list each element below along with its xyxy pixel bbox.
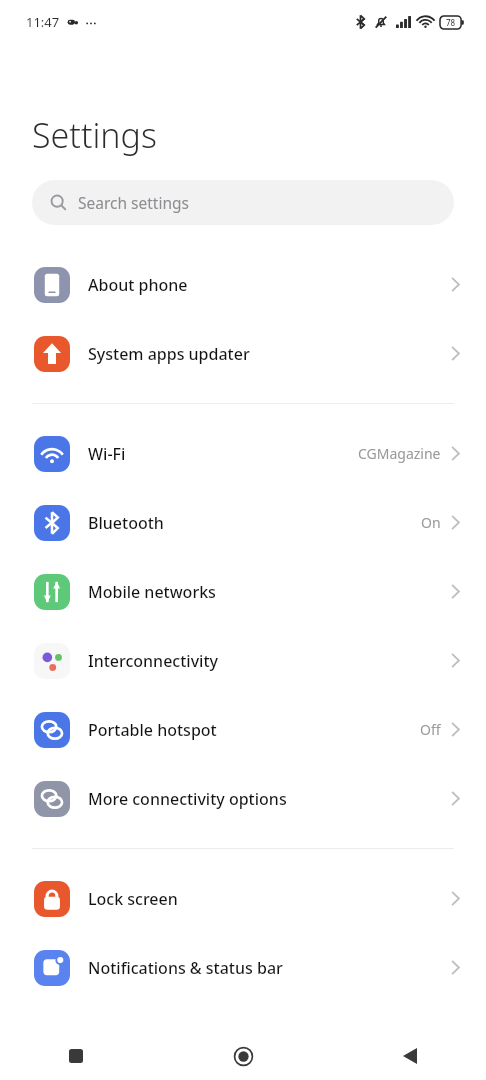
staticText: Search settings [78,192,189,213]
staticText: On [421,513,441,532]
button[interactable]: System apps updater [0,319,486,388]
staticText: Lock screen [88,888,451,910]
button[interactable]: Home [193,1032,293,1080]
staticText: Settings [32,112,157,158]
staticText: 11:47 [26,13,60,31]
button[interactable]: More connectivity options [0,764,486,833]
staticText: Portable hotspot [88,719,420,741]
staticText: Interconnectivity [88,650,451,672]
staticText: Bluetooth [88,512,421,534]
button[interactable]: Lock screen [0,864,486,933]
button[interactable]: Portable hotspot [0,695,486,764]
staticText: CGMagazine [358,444,441,463]
button[interactable]: Interconnectivity [0,626,486,695]
staticText: Notifications & status bar [88,957,451,979]
button[interactable]: Wi-Fi [0,419,486,488]
button[interactable]: Recent apps [26,1032,126,1080]
button[interactable]: Bluetooth [0,488,486,557]
button[interactable]: Notifications & status bar [0,933,486,1002]
button[interactable]: Search settings [32,180,454,225]
staticText: Mobile networks [88,581,451,603]
button[interactable]: About phone [0,250,486,319]
staticText: Off [420,720,441,739]
staticText: System apps updater [88,343,451,365]
staticText: Wi-Fi [88,443,358,465]
button[interactable]: Mobile networks [0,557,486,626]
staticText: 78 [446,17,456,28]
button[interactable]: Back [360,1032,460,1080]
staticText: More connectivity options [88,788,451,810]
staticText: About phone [88,274,451,296]
